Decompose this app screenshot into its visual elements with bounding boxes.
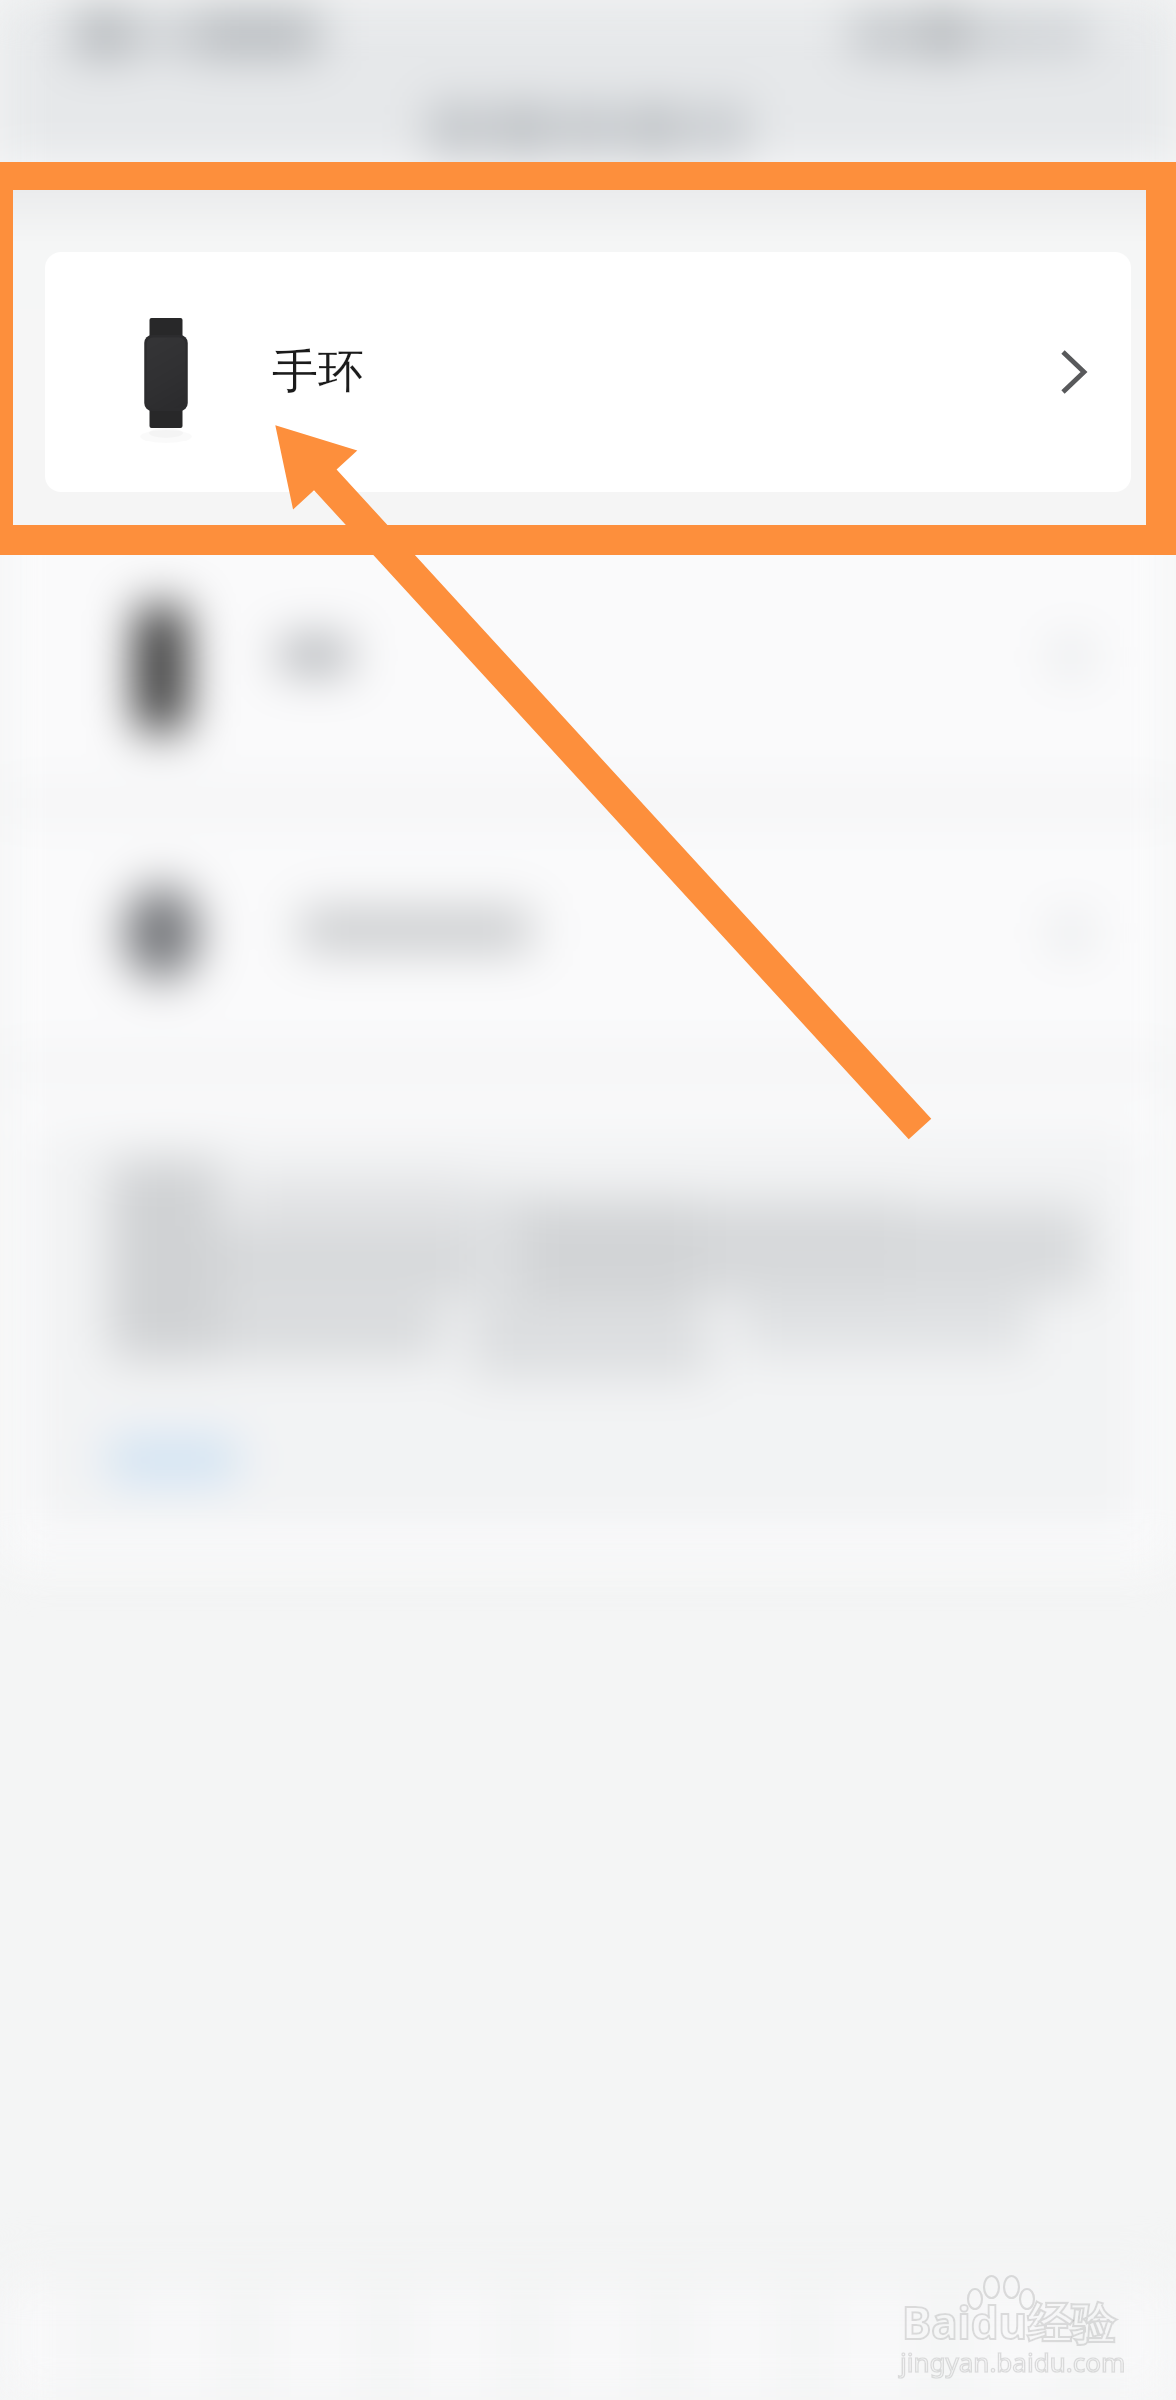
other: 打开手环 <box>1018 252 1131 492</box>
staticText: Baidu经验 <box>902 2292 1116 2352</box>
staticText: jingyan.baidu.com <box>900 2344 1126 2379</box>
staticText: 手环 <box>272 343 364 401</box>
button[interactable]: 手环 <box>45 252 1131 492</box>
